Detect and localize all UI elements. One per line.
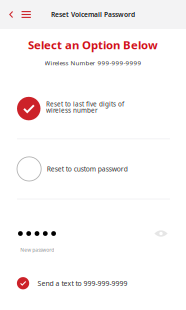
button[interactable]: Reset to last five digits of [0,97,186,120]
button[interactable]: Back [4,3,18,25]
button[interactable]: Reset to custom password [0,157,186,181]
staticText: Send a text to 999-999-9999 [38,279,128,288]
button[interactable]: Send a text to 999-999-9999 [0,277,186,289]
staticText: Reset Voicemail Password [51,10,135,19]
staticText: Wireless Number 999-999-9999 [44,59,141,67]
staticText: Select an Option Below [28,37,158,52]
staticText: New password [20,246,54,253]
staticText: Reset to last five digits of [46,100,124,108]
button[interactable]: Menu [18,3,34,25]
button[interactable]: Show password [153,227,169,239]
staticText: wireless number [46,106,98,114]
staticText: Reset to custom password [47,164,128,173]
